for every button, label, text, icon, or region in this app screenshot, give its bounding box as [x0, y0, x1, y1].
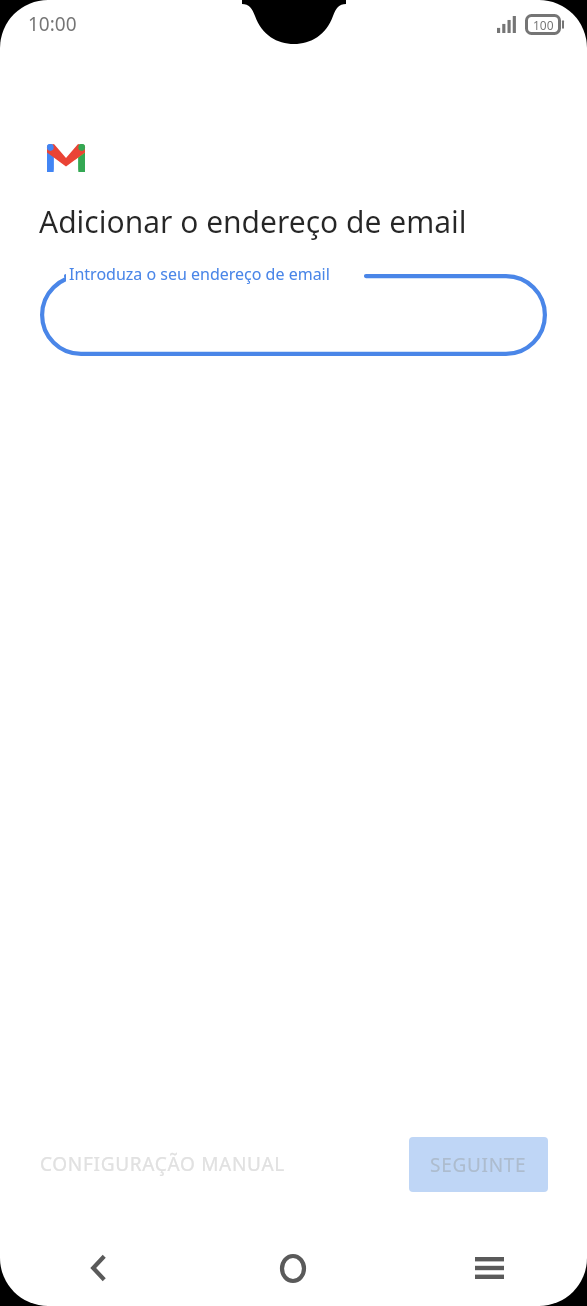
button[interactable]: Introduza o seu endereço de email — [40, 265, 547, 359]
staticText: SEGUINTE — [430, 1152, 527, 1178]
staticText: Adicionar o endereço de email — [39, 201, 467, 242]
staticText: 10:00 — [28, 11, 77, 37]
button[interactable]: Home — [195, 1230, 391, 1306]
staticText: 100 — [533, 17, 554, 33]
button[interactable]: Recent apps — [391, 1230, 587, 1306]
staticText: Introduza o seu endereço de email — [69, 263, 330, 285]
button[interactable]: SEGUINTE — [409, 1137, 548, 1192]
staticText: CONFIGURAÇÃO MANUAL — [40, 1151, 285, 1177]
button[interactable]: CONFIGURAÇÃO MANUAL — [38, 1139, 287, 1189]
button[interactable]: Back — [0, 1230, 195, 1306]
